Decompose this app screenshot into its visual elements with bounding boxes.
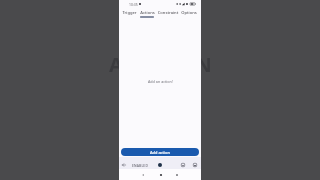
- staticText: Constraints: [157, 10, 179, 18]
- button[interactable]: Trigger: [118, 7, 140, 18]
- button[interactable]: Toggle enabled: [158, 163, 162, 167]
- staticText: Add an action!: [148, 79, 173, 84]
- staticText: Trigger: [122, 10, 137, 16]
- staticText: Add action: [150, 150, 170, 155]
- staticText: ENABLED: [132, 163, 148, 167]
- button[interactable]: Back: [120, 161, 128, 169]
- staticText: 10:35: [129, 2, 138, 7]
- button[interactable]: Options: [178, 7, 200, 18]
- button[interactable]: Duplicate: [179, 161, 187, 169]
- staticText: Actions: [140, 10, 155, 16]
- button[interactable]: Save: [191, 161, 199, 169]
- staticText: Options: [181, 10, 197, 16]
- button[interactable]: Home: [157, 171, 165, 179]
- button[interactable]: Constraints: [157, 7, 179, 18]
- button[interactable]: Recents: [173, 171, 181, 179]
- button[interactable]: Back: [139, 171, 147, 179]
- staticText: ACTION: [109, 51, 217, 78]
- button[interactable]: Actions: [136, 7, 158, 18]
- button[interactable]: Add action: [121, 148, 199, 156]
